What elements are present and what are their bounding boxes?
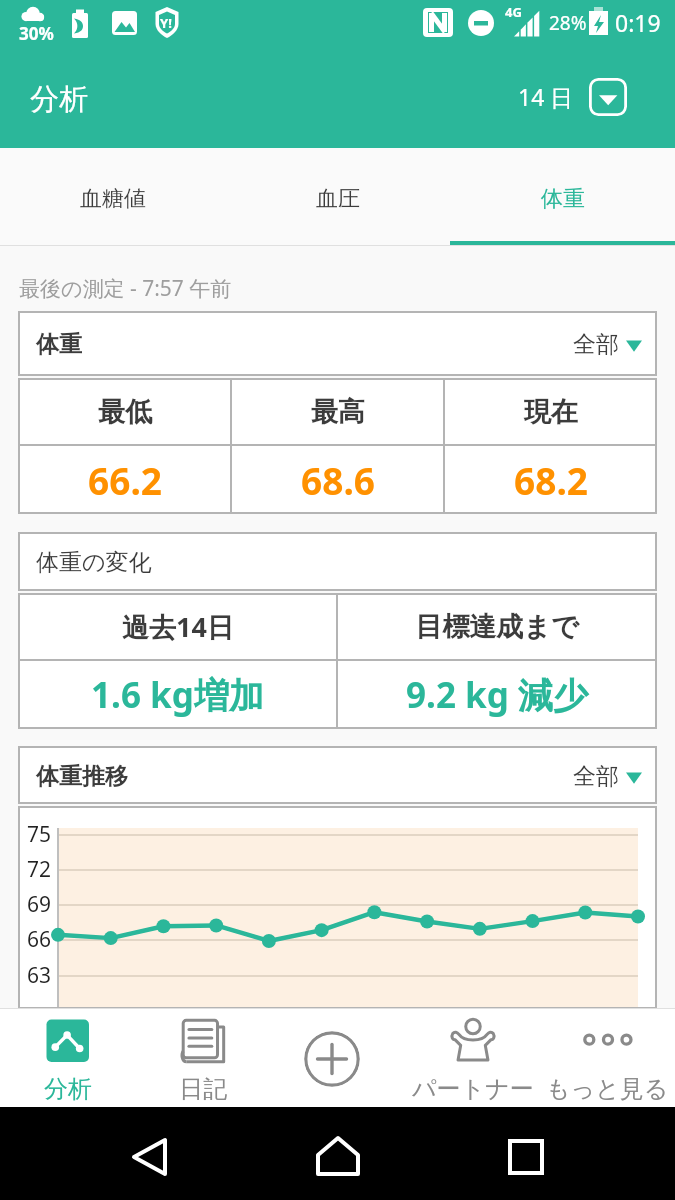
staticText: もっと見る bbox=[546, 1074, 669, 1104]
button[interactable]: 体重 bbox=[450, 148, 675, 246]
button[interactable]: 期間を選択 bbox=[589, 78, 627, 116]
staticText: 血糖値 bbox=[80, 185, 146, 213]
staticText: 14 日 bbox=[518, 81, 574, 112]
button[interactable]: 全部 bbox=[573, 762, 642, 791]
staticText: 0:19 bbox=[615, 7, 661, 38]
staticText: 過去14日 bbox=[122, 608, 234, 645]
button[interactable]: 追加 bbox=[304, 1031, 360, 1087]
button[interactable]: 血圧 bbox=[225, 148, 450, 246]
staticText: 最高 bbox=[311, 395, 365, 429]
staticText: 66.2 bbox=[88, 455, 162, 505]
staticText: 63 bbox=[27, 961, 52, 990]
staticText: Y! bbox=[160, 14, 172, 32]
staticText: 68.2 bbox=[514, 455, 588, 505]
button[interactable]: 日記 bbox=[135, 1008, 270, 1107]
button[interactable]: 血糖値 bbox=[0, 148, 225, 246]
staticText: 最低 bbox=[98, 395, 152, 429]
staticText: 体重の変化 bbox=[36, 548, 152, 577]
staticText: 69 bbox=[27, 890, 52, 919]
staticText: 1.6 kg増加 bbox=[91, 671, 264, 719]
staticText: 66 bbox=[27, 925, 52, 954]
staticText: 体重 bbox=[36, 330, 82, 359]
staticText: 4G bbox=[505, 3, 522, 21]
button[interactable]: パートナー bbox=[405, 1008, 540, 1107]
staticText: 30% bbox=[19, 22, 54, 45]
staticText: 28% bbox=[549, 10, 587, 36]
staticText: 72 bbox=[27, 855, 52, 884]
staticText: パートナー bbox=[412, 1074, 534, 1104]
staticText: 全部 bbox=[573, 762, 619, 791]
staticText: 日記 bbox=[179, 1074, 227, 1104]
staticText: 分析 bbox=[30, 81, 88, 118]
button[interactable]: もっと見る bbox=[540, 1008, 675, 1107]
staticText: 9.2 kg 減少 bbox=[406, 671, 588, 719]
button[interactable]: 分析 bbox=[0, 1008, 135, 1107]
staticText: 最後の測定 - 7:57 午前 bbox=[19, 274, 232, 303]
button[interactable]: 全部 bbox=[573, 330, 642, 359]
staticText: 体重 bbox=[541, 185, 585, 213]
staticText: 現在 bbox=[524, 395, 578, 429]
staticText: 75 bbox=[27, 820, 52, 849]
staticText: 全部 bbox=[573, 330, 619, 359]
staticText: 血圧 bbox=[316, 185, 360, 213]
staticText: 68.6 bbox=[301, 455, 375, 505]
staticText: 体重推移 bbox=[36, 762, 128, 791]
staticText: 目標達成まで bbox=[415, 610, 579, 644]
staticText: 分析 bbox=[44, 1074, 92, 1104]
